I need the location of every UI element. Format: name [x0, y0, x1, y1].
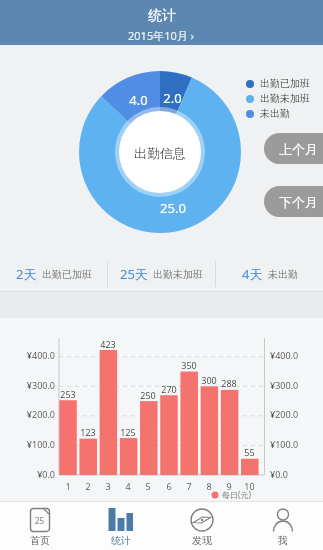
staticText: 288	[221, 377, 237, 389]
button[interactable]: 下个月	[264, 186, 323, 217]
button[interactable]: 发现	[161, 501, 242, 550]
staticText: 253	[60, 388, 76, 400]
staticText: 出勤信息	[134, 145, 186, 161]
staticText: 4天	[242, 265, 263, 283]
staticText: ¥400.0	[270, 349, 299, 361]
staticText: 10	[244, 480, 255, 492]
staticText: 25天	[120, 265, 148, 283]
staticText: 统计	[148, 7, 176, 25]
staticText: 未出勤	[260, 107, 290, 120]
staticText: 4	[125, 480, 131, 492]
button[interactable]: 2天	[0, 253, 107, 295]
button[interactable]: 25	[0, 501, 323, 550]
button[interactable]: 上个月	[264, 133, 323, 164]
staticText: ¥100.0	[270, 438, 299, 450]
staticText: 250	[140, 389, 156, 401]
staticText: 每日(元)	[222, 489, 251, 500]
staticText: 下个月	[279, 194, 318, 210]
staticText: 出勤未加班	[260, 92, 310, 105]
staticText: 出勤已加班	[42, 268, 92, 281]
staticText: 6	[166, 480, 172, 492]
staticText: ¥300.0	[26, 379, 55, 391]
staticText: ¥0.0	[270, 468, 288, 480]
staticText: 25.0	[160, 199, 186, 217]
staticText: 未出勤	[268, 268, 298, 281]
staticText: ¥0.0	[37, 468, 55, 480]
staticText: 123	[80, 426, 96, 438]
staticText: 2天	[16, 265, 37, 283]
staticText: 8	[206, 480, 212, 492]
staticText: 55	[244, 446, 255, 458]
staticText: 4.0	[129, 91, 148, 109]
staticText: 5	[145, 480, 151, 492]
staticText: ¥200.0	[26, 408, 55, 420]
staticText: 上个月	[279, 141, 318, 157]
staticText: 我	[278, 534, 288, 547]
staticText: ¥300.0	[270, 379, 299, 391]
staticText: 9	[226, 480, 232, 492]
button[interactable]: 我	[242, 501, 323, 550]
button[interactable]: 25天	[108, 253, 215, 295]
staticText: 270	[161, 383, 177, 395]
staticText: 125	[120, 426, 136, 438]
staticText: 7	[186, 480, 192, 492]
staticText: ¥400.0	[26, 349, 55, 361]
staticText: ¥200.0	[270, 408, 299, 420]
staticText: 25	[35, 515, 45, 526]
button[interactable]: 25	[0, 501, 80, 550]
staticText: 2.0	[163, 89, 182, 107]
staticText: 发现	[192, 534, 212, 547]
staticText: 首页	[30, 534, 50, 547]
staticText: 300	[201, 374, 217, 386]
staticText: 423	[100, 338, 116, 350]
staticText: 统计	[111, 534, 131, 547]
staticText: 出勤已加班	[260, 77, 310, 90]
staticText: 350	[181, 359, 197, 371]
button[interactable]: 统计	[80, 501, 161, 550]
staticText: 2	[85, 480, 91, 492]
staticText: 出勤未加班	[153, 268, 203, 281]
button[interactable]: 2015年10月 ›	[128, 28, 195, 43]
staticText: 3	[105, 480, 111, 492]
staticText: 2015年10月 ›	[128, 28, 195, 43]
staticText: ¥100.0	[26, 438, 55, 450]
staticText: 1	[65, 480, 71, 492]
button[interactable]: 4天	[216, 253, 323, 295]
